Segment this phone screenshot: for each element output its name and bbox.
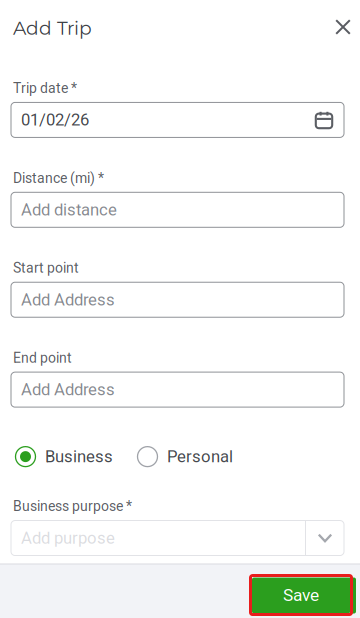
staticText: Start point: [13, 260, 79, 276]
staticText: Save: [283, 585, 319, 605]
staticText: Trip date *: [13, 80, 77, 96]
button[interactable]: Add purpose: [11, 520, 305, 555]
staticText: Add Trip: [13, 17, 92, 39]
staticText: Personal: [167, 447, 233, 466]
button[interactable]: Add distance: [11, 192, 344, 227]
button[interactable]: Close: [329, 14, 357, 42]
button[interactable]: 01/02/26: [11, 102, 344, 137]
staticText: Add distance: [21, 200, 117, 219]
button[interactable]: Add Address: [11, 372, 344, 407]
staticText: Business: [45, 447, 113, 466]
staticText: End point: [13, 350, 72, 366]
button[interactable]: Personal: [137, 446, 233, 467]
staticText: Add Address: [21, 380, 115, 399]
staticText: Add Address: [21, 290, 115, 309]
staticText: Business purpose *: [13, 498, 132, 514]
button[interactable]: Add Address: [11, 282, 344, 317]
staticText: Distance (mi) *: [13, 170, 104, 186]
button[interactable]: Business: [15, 446, 113, 467]
staticText: 01/02/26: [21, 110, 89, 130]
button[interactable]: Choose business purpose: [306, 520, 344, 555]
staticText: Add purpose: [21, 528, 115, 548]
